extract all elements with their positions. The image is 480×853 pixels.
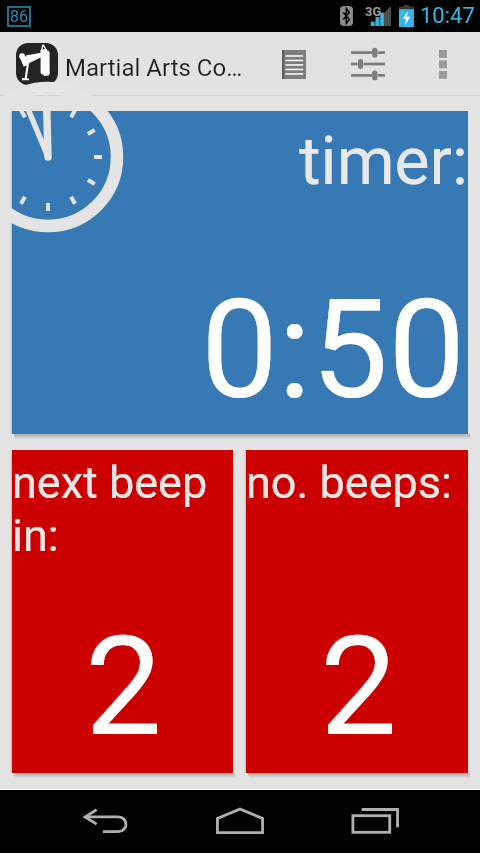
staticText: Martial Arts Co… [65,54,243,82]
button[interactable]: Recent apps [306,789,444,853]
staticText: next beep in: [12,456,233,562]
staticText: 3G [365,4,382,19]
button[interactable]: Workout list [256,32,331,96]
button[interactable]: More options [405,32,480,96]
staticText: 0:50 [201,270,466,431]
staticText: 2 [320,607,397,768]
staticText: 2 [85,607,162,768]
button[interactable]: next beep in: [12,450,233,773]
staticText: timer: [299,123,468,200]
button[interactable]: Back [39,789,174,853]
staticText: 10:47 [420,3,475,29]
button[interactable]: no. beeps: [246,450,468,773]
button[interactable]: Martial Arts Co… [0,32,256,96]
staticText: 86 [10,7,28,26]
button[interactable]: Home [174,789,306,853]
button[interactable]: timer: [12,111,468,434]
button[interactable]: Settings [331,32,405,96]
staticText: no. beeps: [246,456,452,509]
